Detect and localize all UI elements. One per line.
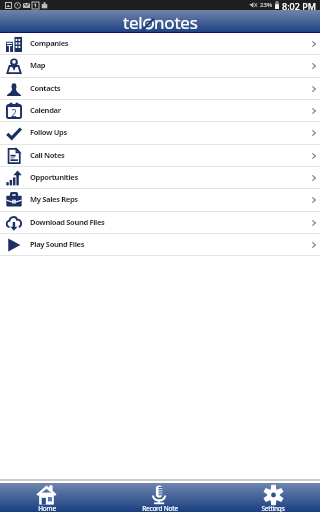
staticText: Record Note — [142, 504, 178, 512]
button[interactable]: Record Note — [93, 483, 226, 512]
staticText: 23% — [260, 1, 273, 9]
staticText: Calendar — [30, 105, 61, 115]
button[interactable]: Download Sound Files — [0, 212, 320, 234]
button[interactable]: Map — [0, 55, 320, 78]
staticText: My Sales Reps — [30, 194, 78, 204]
button[interactable]: Opportunities — [0, 167, 320, 189]
staticText: Follow Ups — [30, 127, 67, 137]
button[interactable]: Follow Ups — [0, 122, 320, 145]
staticText: Play Sound Files — [30, 239, 85, 249]
staticText: Opportunities — [30, 172, 78, 182]
button[interactable]: Settings — [226, 483, 320, 512]
button[interactable]: My Sales Reps — [0, 189, 320, 212]
staticText: tel — [123, 11, 143, 34]
staticText: notes — [154, 11, 198, 34]
staticText: Settings — [261, 504, 285, 512]
staticText: Companies — [30, 38, 69, 48]
staticText: Contacts — [30, 83, 61, 93]
staticText: 8:02 PM — [282, 0, 316, 10]
button[interactable]: Companies — [0, 33, 320, 55]
staticText: Download Sound Files — [30, 217, 105, 227]
staticText: 2 — [11, 106, 17, 120]
button[interactable]: Home — [0, 483, 93, 512]
staticText: Call Notes — [30, 150, 65, 160]
staticText: Home — [38, 504, 56, 512]
button[interactable]: 2 — [0, 100, 320, 122]
staticText: Map — [30, 60, 46, 70]
button[interactable]: Contacts — [0, 78, 320, 100]
button[interactable]: Play Sound Files — [0, 234, 320, 256]
button[interactable]: Call Notes — [0, 145, 320, 167]
